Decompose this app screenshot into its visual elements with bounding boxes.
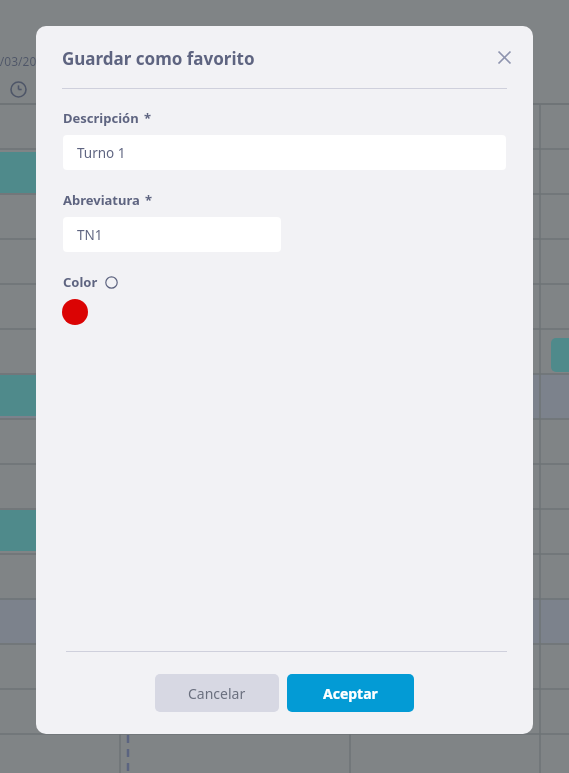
staticText: Cancelar — [188, 684, 246, 703]
staticText: * — [145, 191, 153, 209]
staticText: Turno 1 — [77, 144, 126, 162]
staticText: 9/03/20 — [0, 53, 37, 69]
button[interactable]: Seleccionar color — [62, 299, 88, 325]
button[interactable]: Ayuda sobre el color — [104, 275, 118, 289]
button[interactable]: TN1 — [63, 217, 281, 252]
staticText: Descripción — [63, 109, 139, 127]
staticText: Abreviatura — [63, 191, 140, 209]
staticText: Guardar como favorito — [62, 47, 255, 70]
staticText: Color — [63, 273, 98, 291]
staticText: TN1 — [77, 226, 103, 244]
button[interactable]: Turno 1 — [63, 135, 506, 170]
button[interactable]: Cerrar — [487, 40, 521, 74]
staticText: Aceptar — [323, 684, 378, 703]
staticText: * — [144, 109, 152, 127]
button[interactable]: Aceptar — [287, 674, 414, 712]
button[interactable]: Cancelar — [155, 674, 279, 712]
